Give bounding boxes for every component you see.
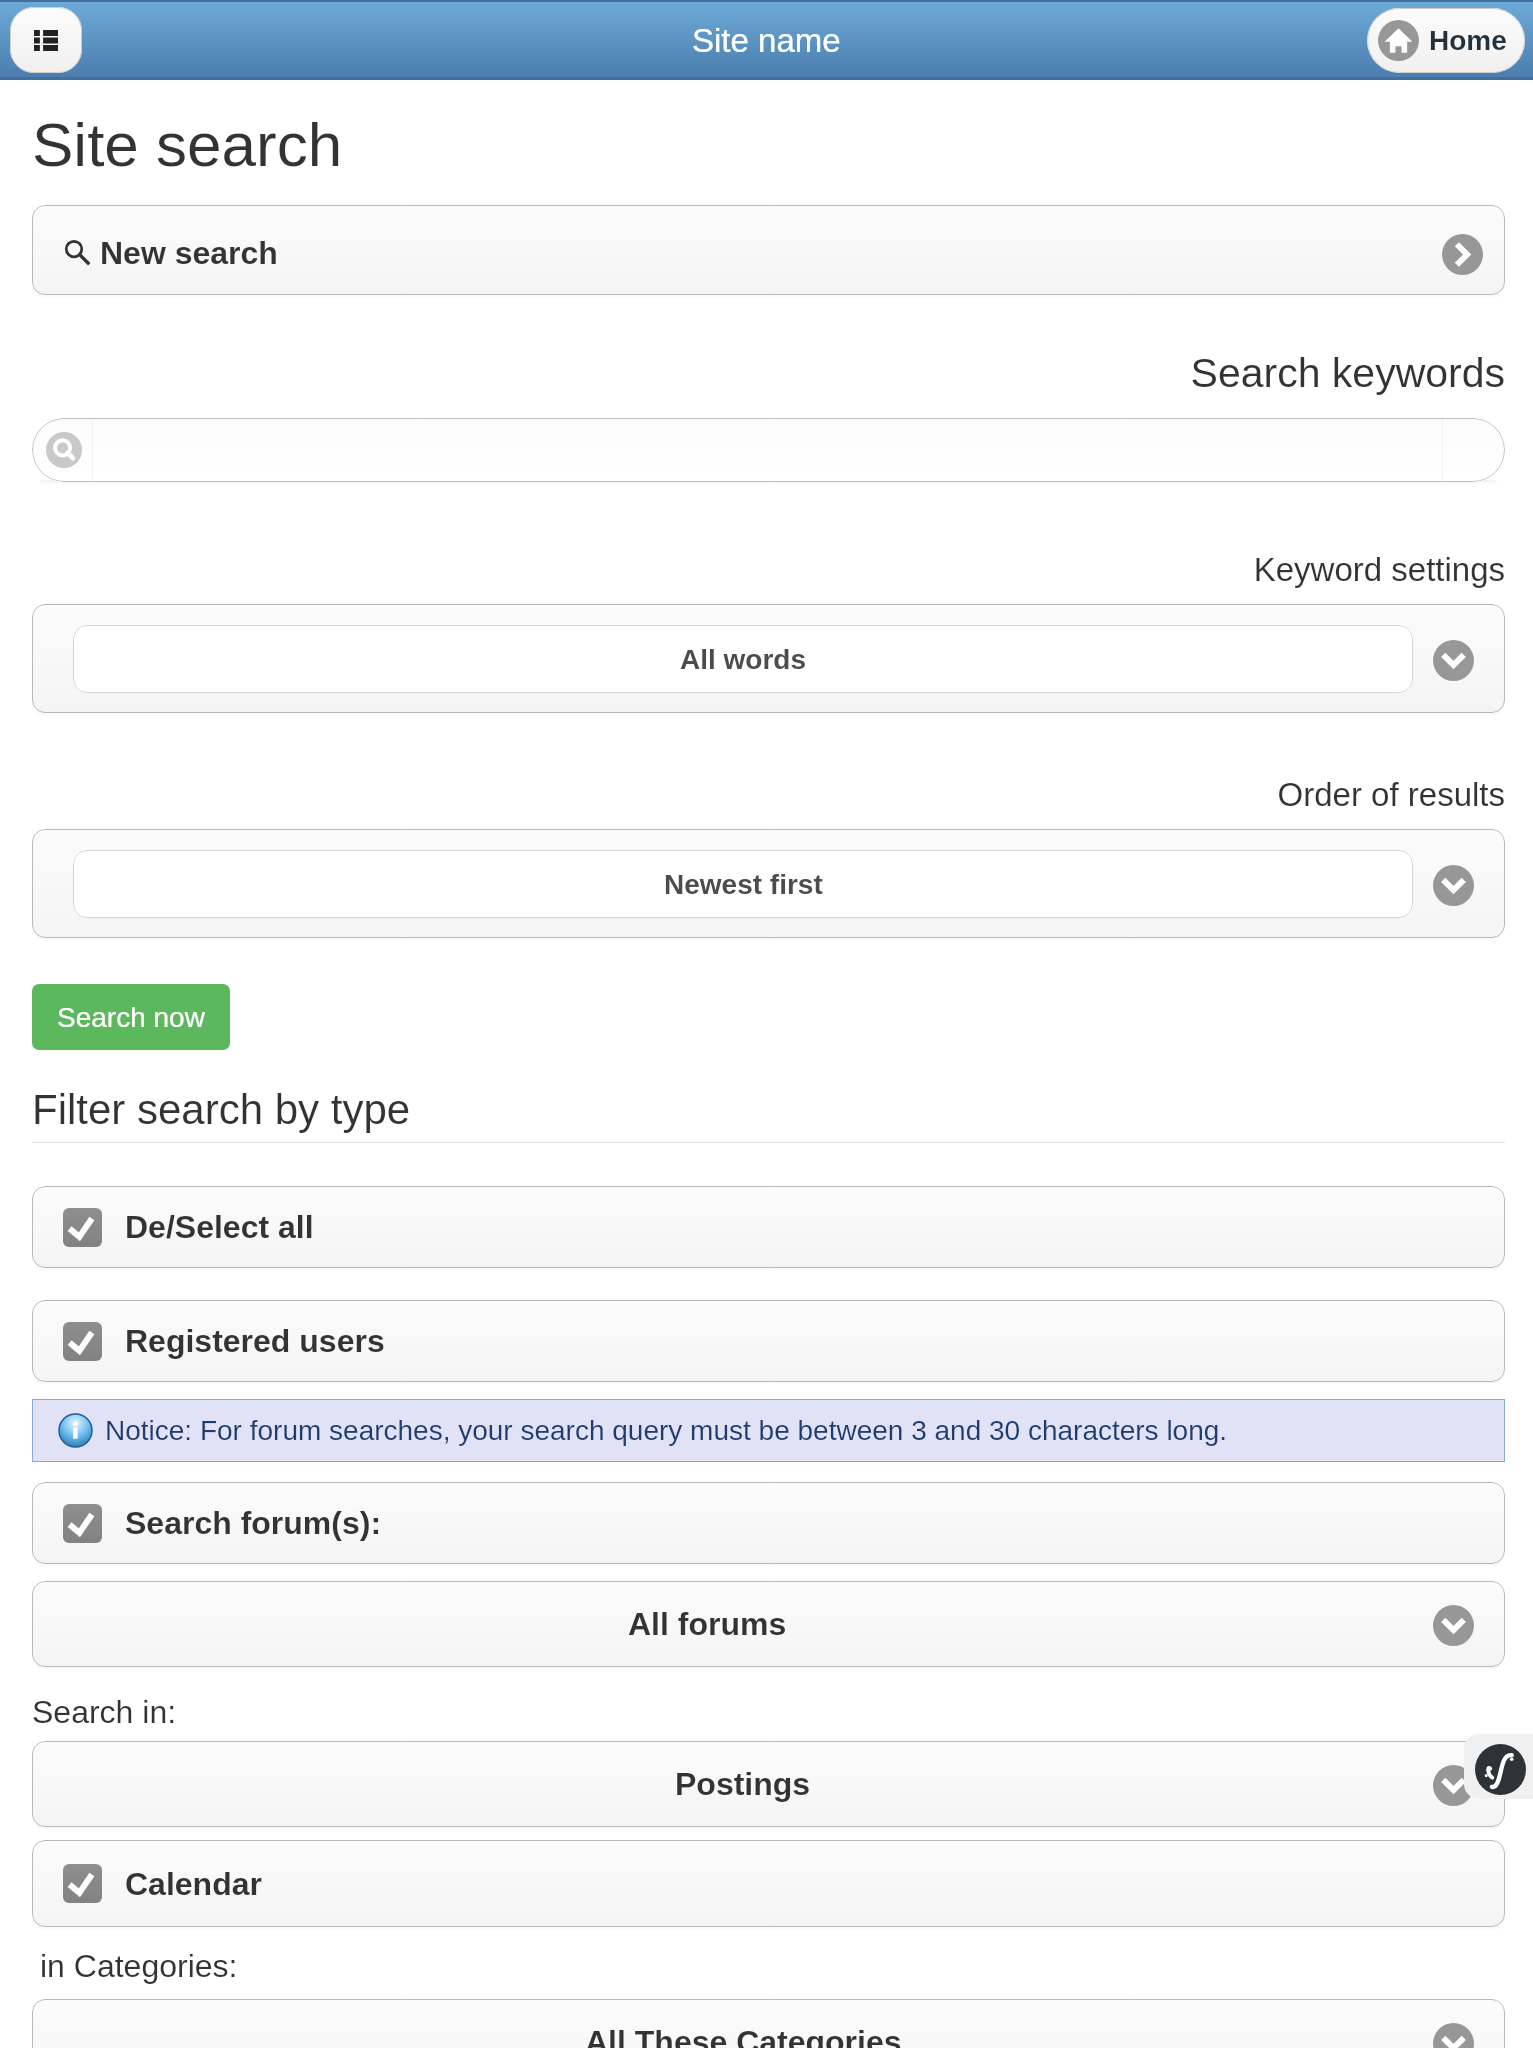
button[interactable]: Menu bbox=[10, 7, 82, 73]
button[interactable]: All forums bbox=[32, 1581, 1505, 1667]
staticText: Search keywords bbox=[32, 350, 1505, 396]
staticText: Home bbox=[1429, 25, 1507, 56]
staticText: Calendar bbox=[125, 1866, 262, 1902]
button[interactable]: Search keywords input bbox=[32, 418, 1505, 482]
button[interactable]: Symfony profiler bbox=[1464, 1734, 1533, 1799]
staticText: Search in: bbox=[32, 1694, 177, 1730]
button[interactable]: Newest first bbox=[32, 829, 1505, 938]
button[interactable]: New search bbox=[32, 205, 1505, 295]
staticText: Site search bbox=[32, 110, 343, 179]
button[interactable]: Search forum(s): bbox=[32, 1482, 1505, 1564]
button[interactable]: Postings bbox=[32, 1741, 1505, 1827]
staticText: New search bbox=[100, 235, 278, 271]
staticText: in Categories: bbox=[40, 1948, 238, 1984]
button[interactable]: De/Select all bbox=[32, 1186, 1505, 1268]
staticText: Order of results bbox=[32, 776, 1505, 813]
button[interactable]: All words bbox=[32, 604, 1505, 713]
staticText: Notice: For forum searches, your search … bbox=[105, 1415, 1228, 1446]
staticText: Keyword settings bbox=[32, 551, 1505, 588]
staticText: De/Select all bbox=[125, 1209, 314, 1245]
staticText: Search now bbox=[57, 1002, 205, 1033]
staticText: All words bbox=[680, 644, 807, 675]
staticText: Postings bbox=[675, 1766, 811, 1802]
staticText: Registered users bbox=[125, 1323, 385, 1359]
button[interactable]: Registered users bbox=[32, 1300, 1505, 1382]
button[interactable]: Open new search bbox=[1442, 234, 1483, 275]
button[interactable]: Calendar bbox=[32, 1840, 1505, 1927]
button[interactable]: Search now bbox=[32, 984, 230, 1050]
staticText: All forums bbox=[628, 1606, 787, 1642]
button[interactable]: Home bbox=[1367, 8, 1525, 73]
staticText: All These Categories bbox=[585, 2024, 902, 2048]
staticText: Filter search by type bbox=[32, 1086, 1505, 1133]
staticText: Site name bbox=[692, 22, 841, 59]
staticText: Newest first bbox=[664, 869, 823, 900]
staticText: Search forum(s): bbox=[125, 1505, 382, 1541]
button[interactable]: All These Categories bbox=[32, 1999, 1505, 2048]
